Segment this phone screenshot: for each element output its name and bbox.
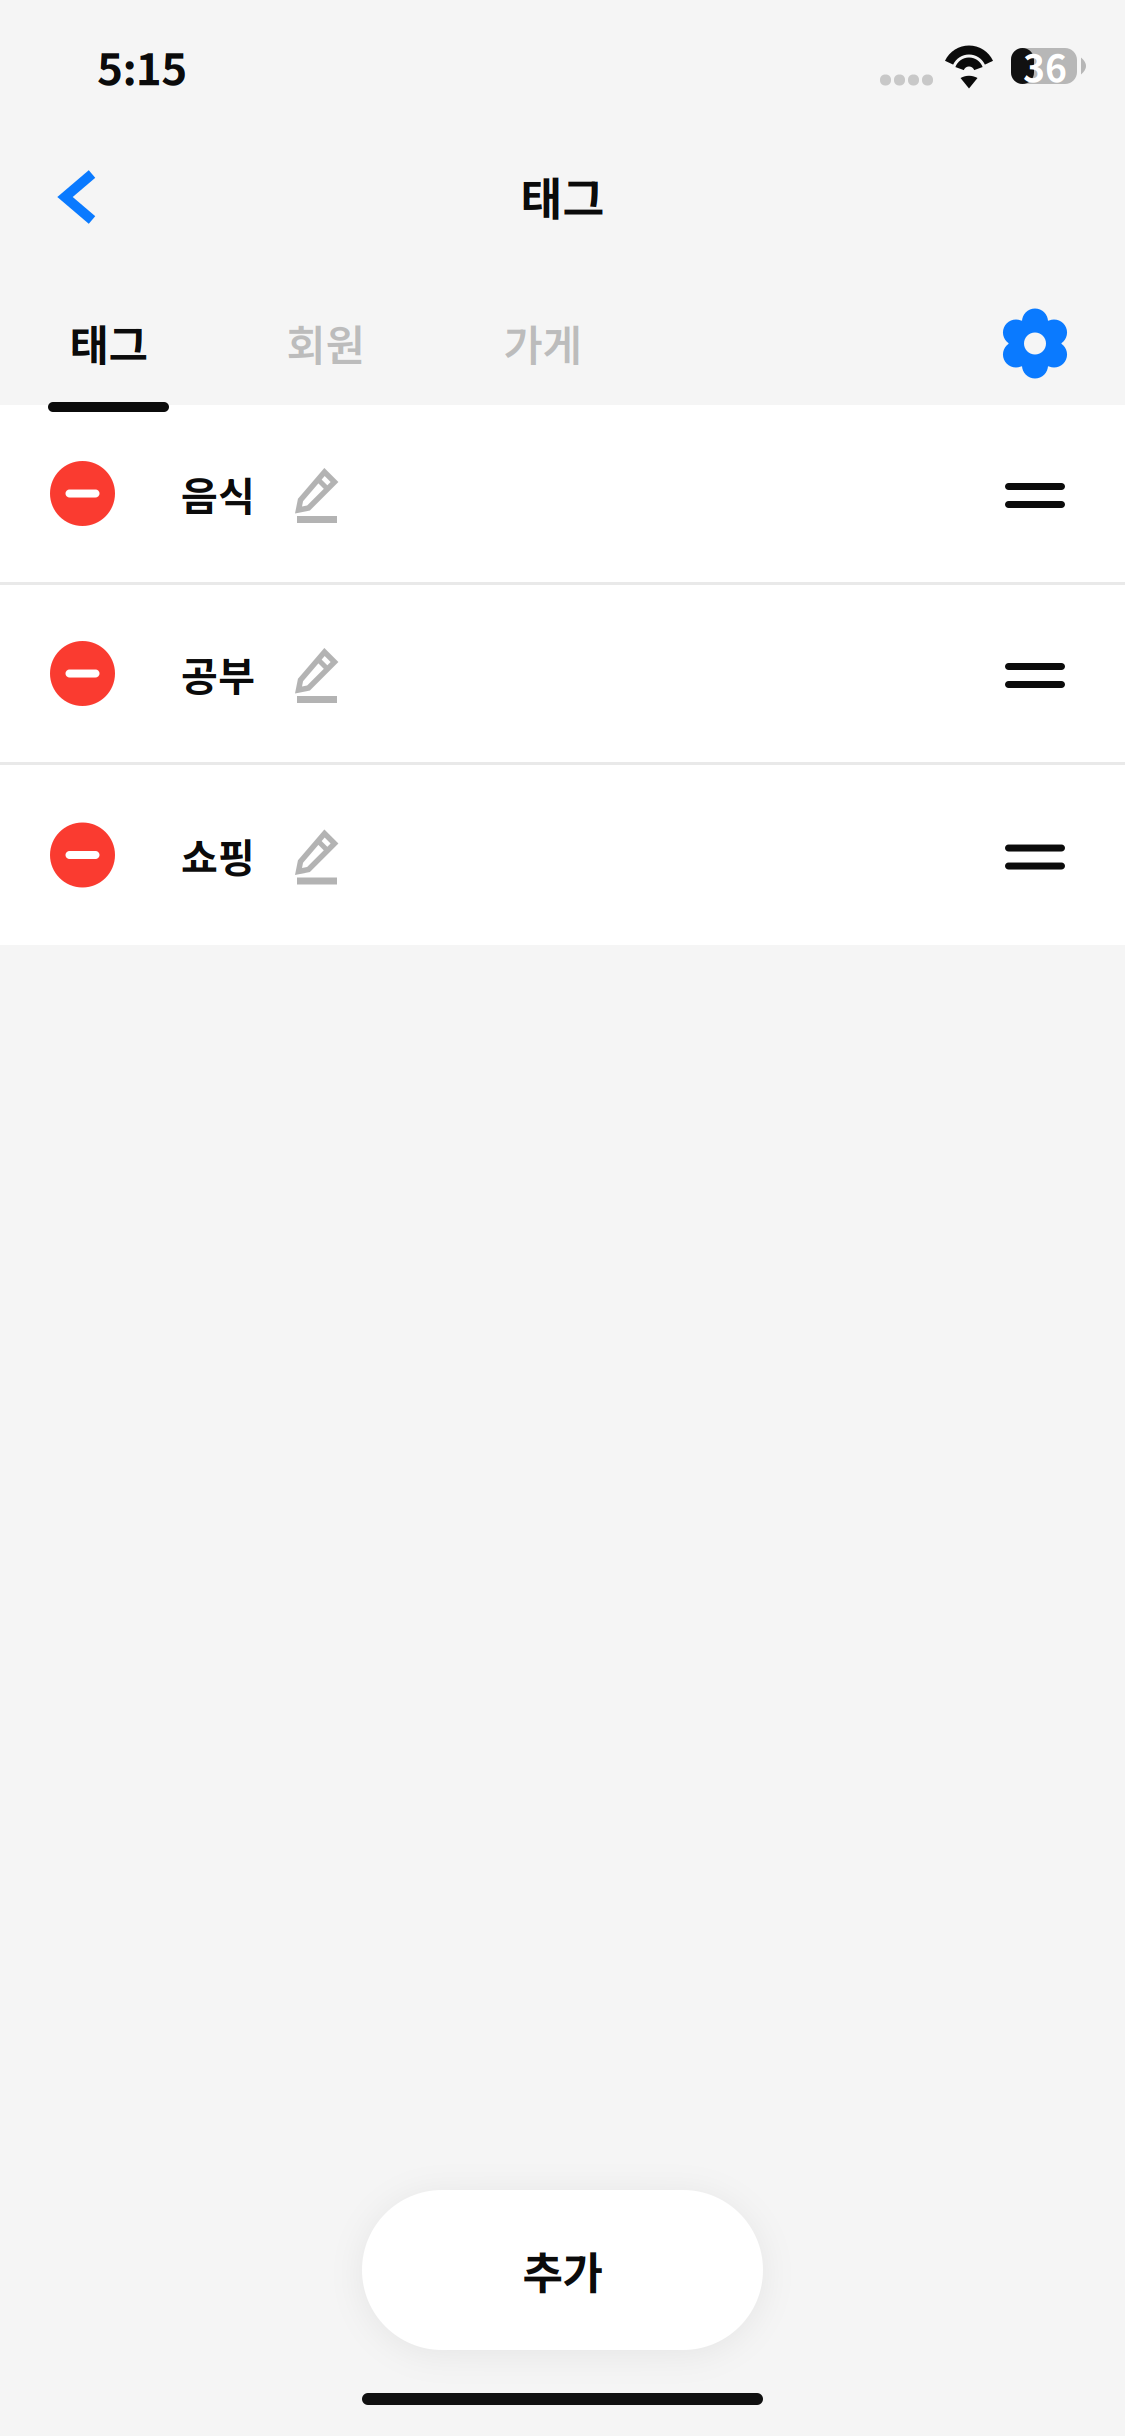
staticText: 쇼핑 bbox=[181, 826, 255, 884]
staticText: 가게 bbox=[503, 312, 581, 373]
button[interactable]: Delete 음식 bbox=[0, 433, 181, 554]
staticText: 태그 bbox=[69, 312, 147, 373]
staticText: 36 bbox=[1023, 39, 1067, 93]
button[interactable]: Reorder 공부 bbox=[965, 625, 1125, 722]
button[interactable]: Settings bbox=[970, 272, 1125, 404]
button[interactable]: 가게 bbox=[434, 272, 651, 405]
button[interactable]: 회원 bbox=[217, 272, 434, 405]
staticText: 5:15 bbox=[97, 34, 187, 98]
staticText: 태그 bbox=[520, 163, 604, 229]
staticText: 회원 bbox=[286, 312, 364, 373]
button[interactable]: Rename 음식 bbox=[255, 438, 365, 548]
button[interactable]: Delete 쇼핑 bbox=[0, 794, 181, 915]
button[interactable]: 추가 bbox=[362, 2190, 763, 2350]
button[interactable]: 태그 bbox=[0, 272, 217, 405]
button[interactable]: Rename 쇼핑 bbox=[255, 800, 365, 910]
button[interactable]: Reorder 음식 bbox=[965, 445, 1125, 542]
staticText: 공부 bbox=[181, 644, 255, 702]
button[interactable]: Delete 공부 bbox=[0, 613, 181, 734]
staticText: 추가 bbox=[522, 2238, 602, 2302]
staticText: 음식 bbox=[181, 464, 255, 522]
button[interactable]: Back bbox=[0, 155, 143, 249]
button[interactable]: Rename 공부 bbox=[255, 618, 365, 728]
button[interactable]: Reorder 쇼핑 bbox=[965, 806, 1125, 903]
